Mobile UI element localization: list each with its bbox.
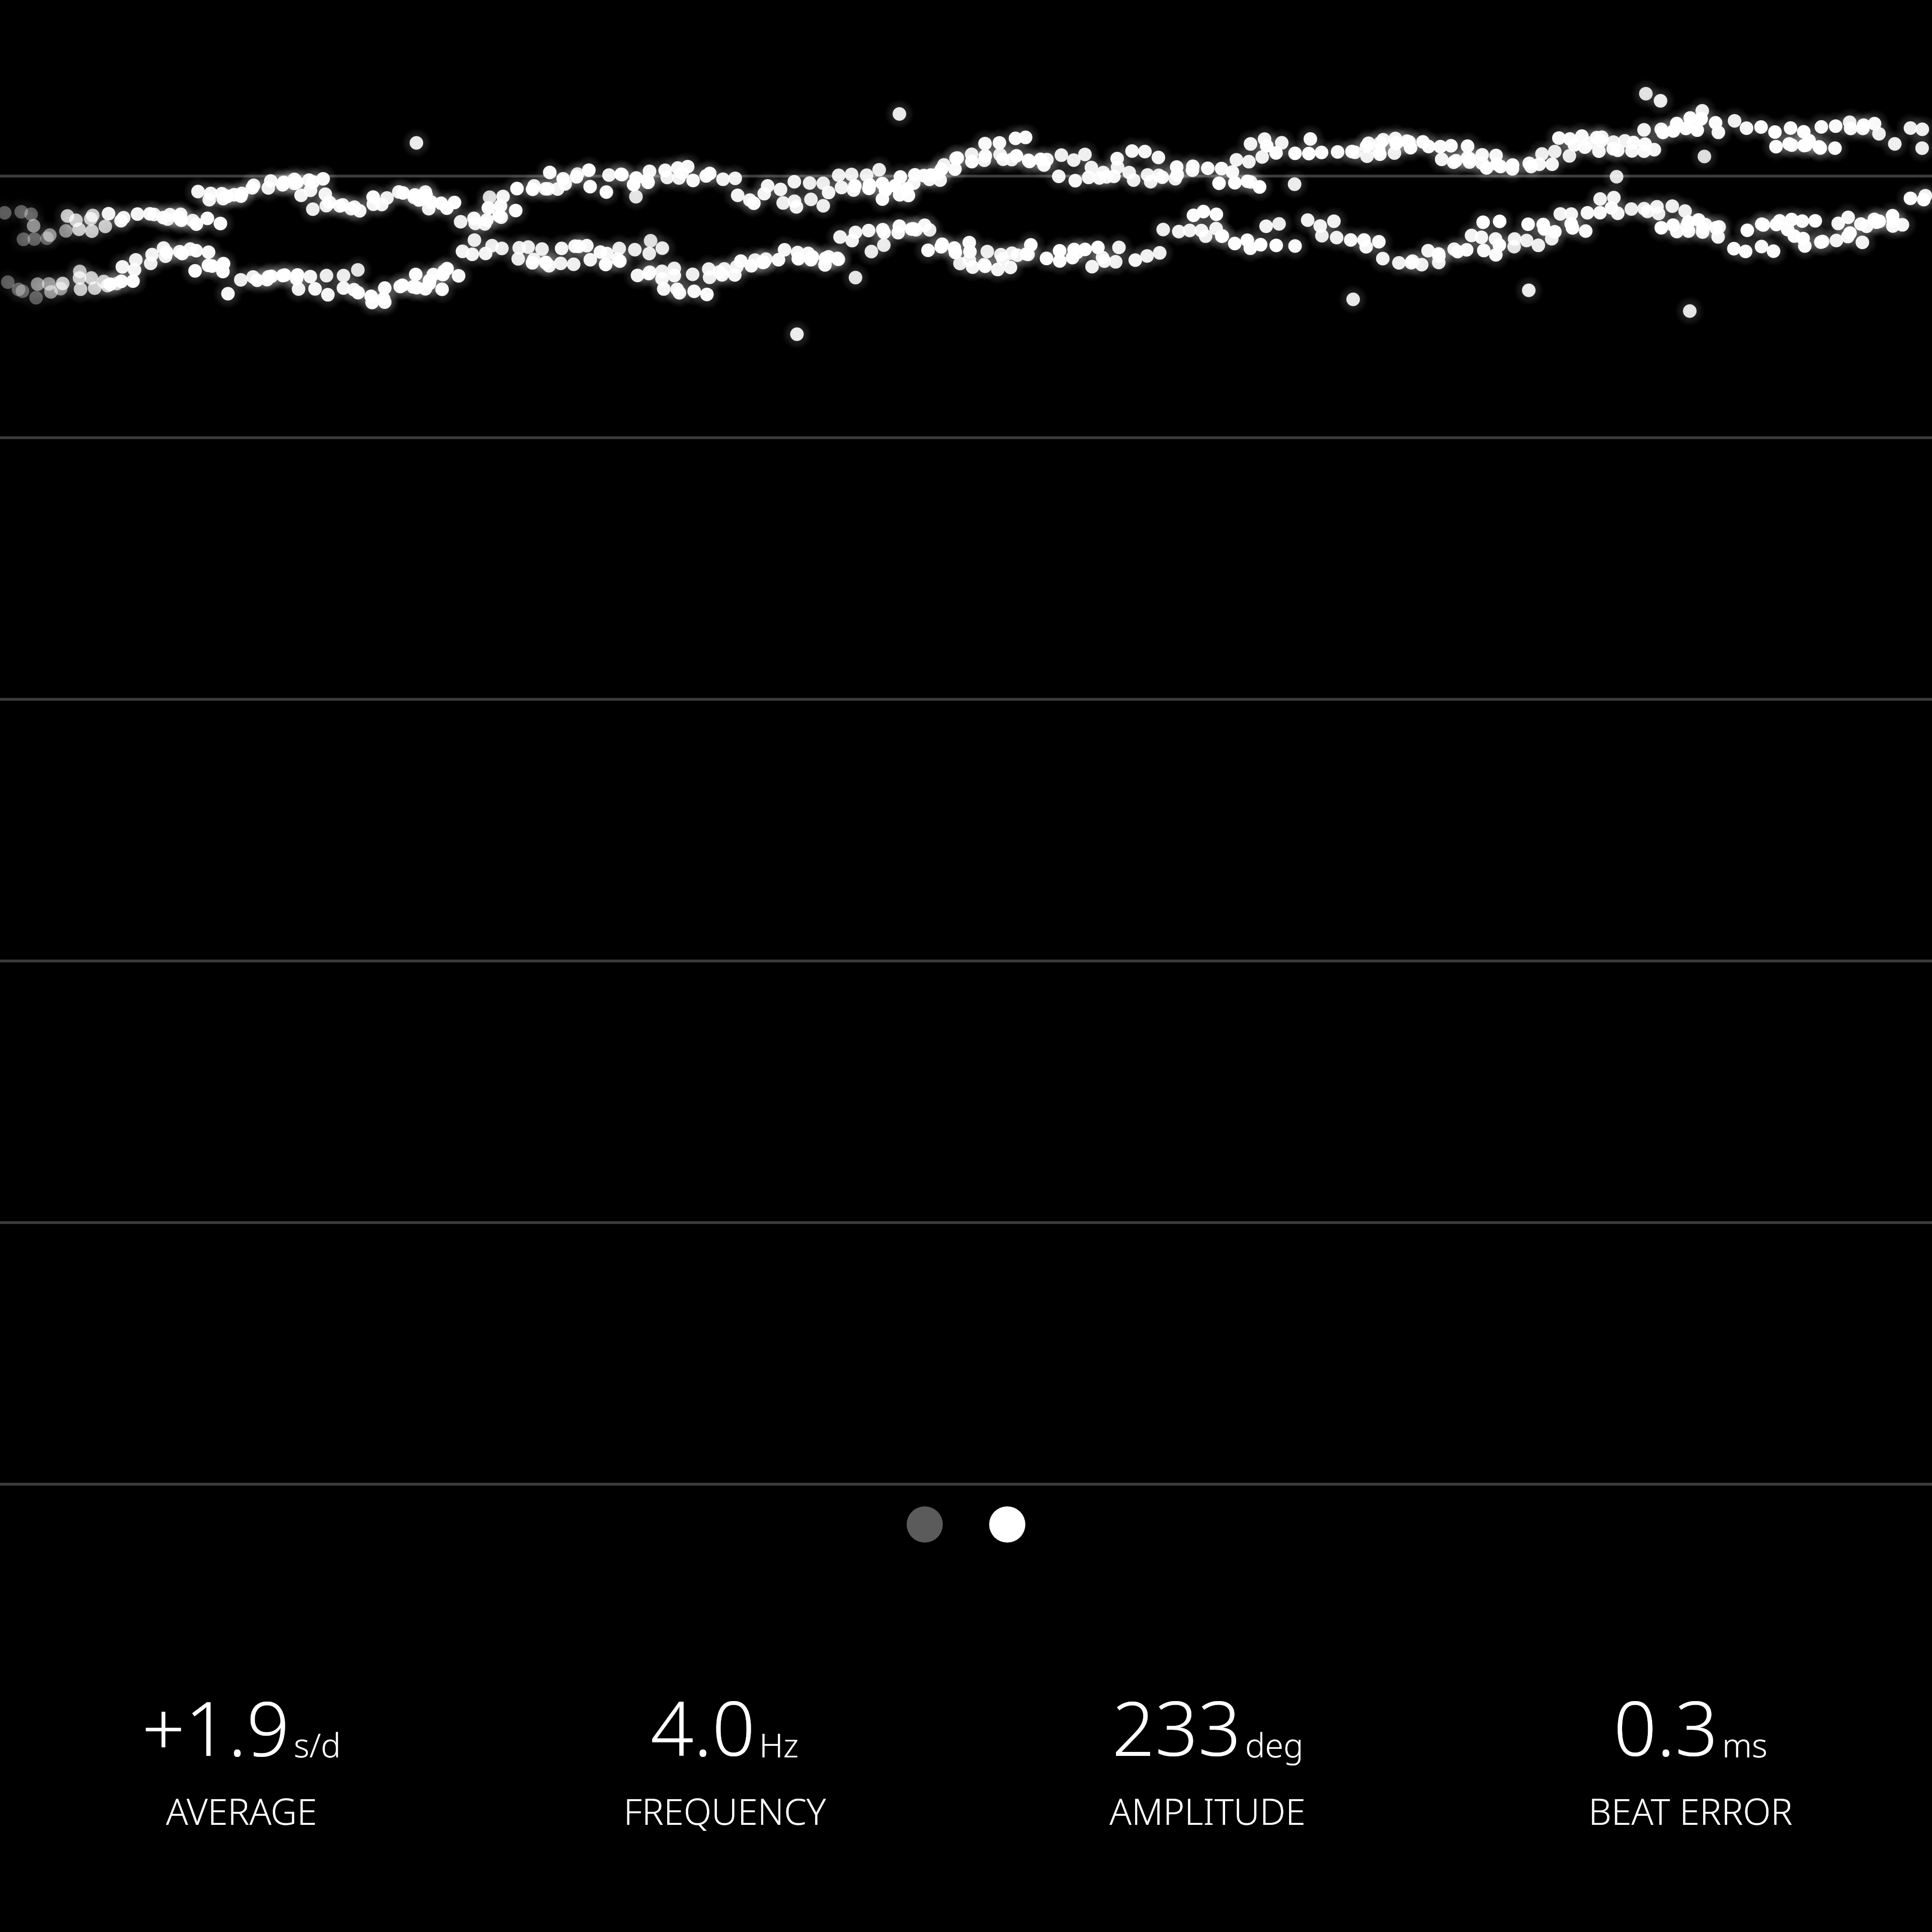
button[interactable]: 4.0 (483, 1675, 966, 1835)
button[interactable]: 0.3 (1449, 1675, 1932, 1835)
staticText: s/d (294, 1722, 341, 1767)
staticText: Hz (759, 1722, 799, 1767)
staticText: AMPLITUDE (1109, 1786, 1306, 1835)
staticText: FREQUENCY (623, 1786, 826, 1835)
button[interactable]: +1.9 (0, 1675, 483, 1835)
staticText: +1.9 (142, 1675, 290, 1778)
staticText: 4.0 (651, 1675, 755, 1778)
staticText: ms (1722, 1722, 1767, 1767)
staticText: 233 (1112, 1675, 1241, 1778)
staticText: AVERAGE (166, 1786, 317, 1835)
staticText: 0.3 (1614, 1675, 1718, 1778)
button[interactable]: Page 2, selected (989, 1506, 1025, 1543)
button[interactable]: 233 (966, 1675, 1449, 1835)
button[interactable]: Page 1 (907, 1506, 943, 1543)
staticText: BEAT ERROR (1588, 1786, 1793, 1835)
staticText: deg (1245, 1722, 1304, 1767)
